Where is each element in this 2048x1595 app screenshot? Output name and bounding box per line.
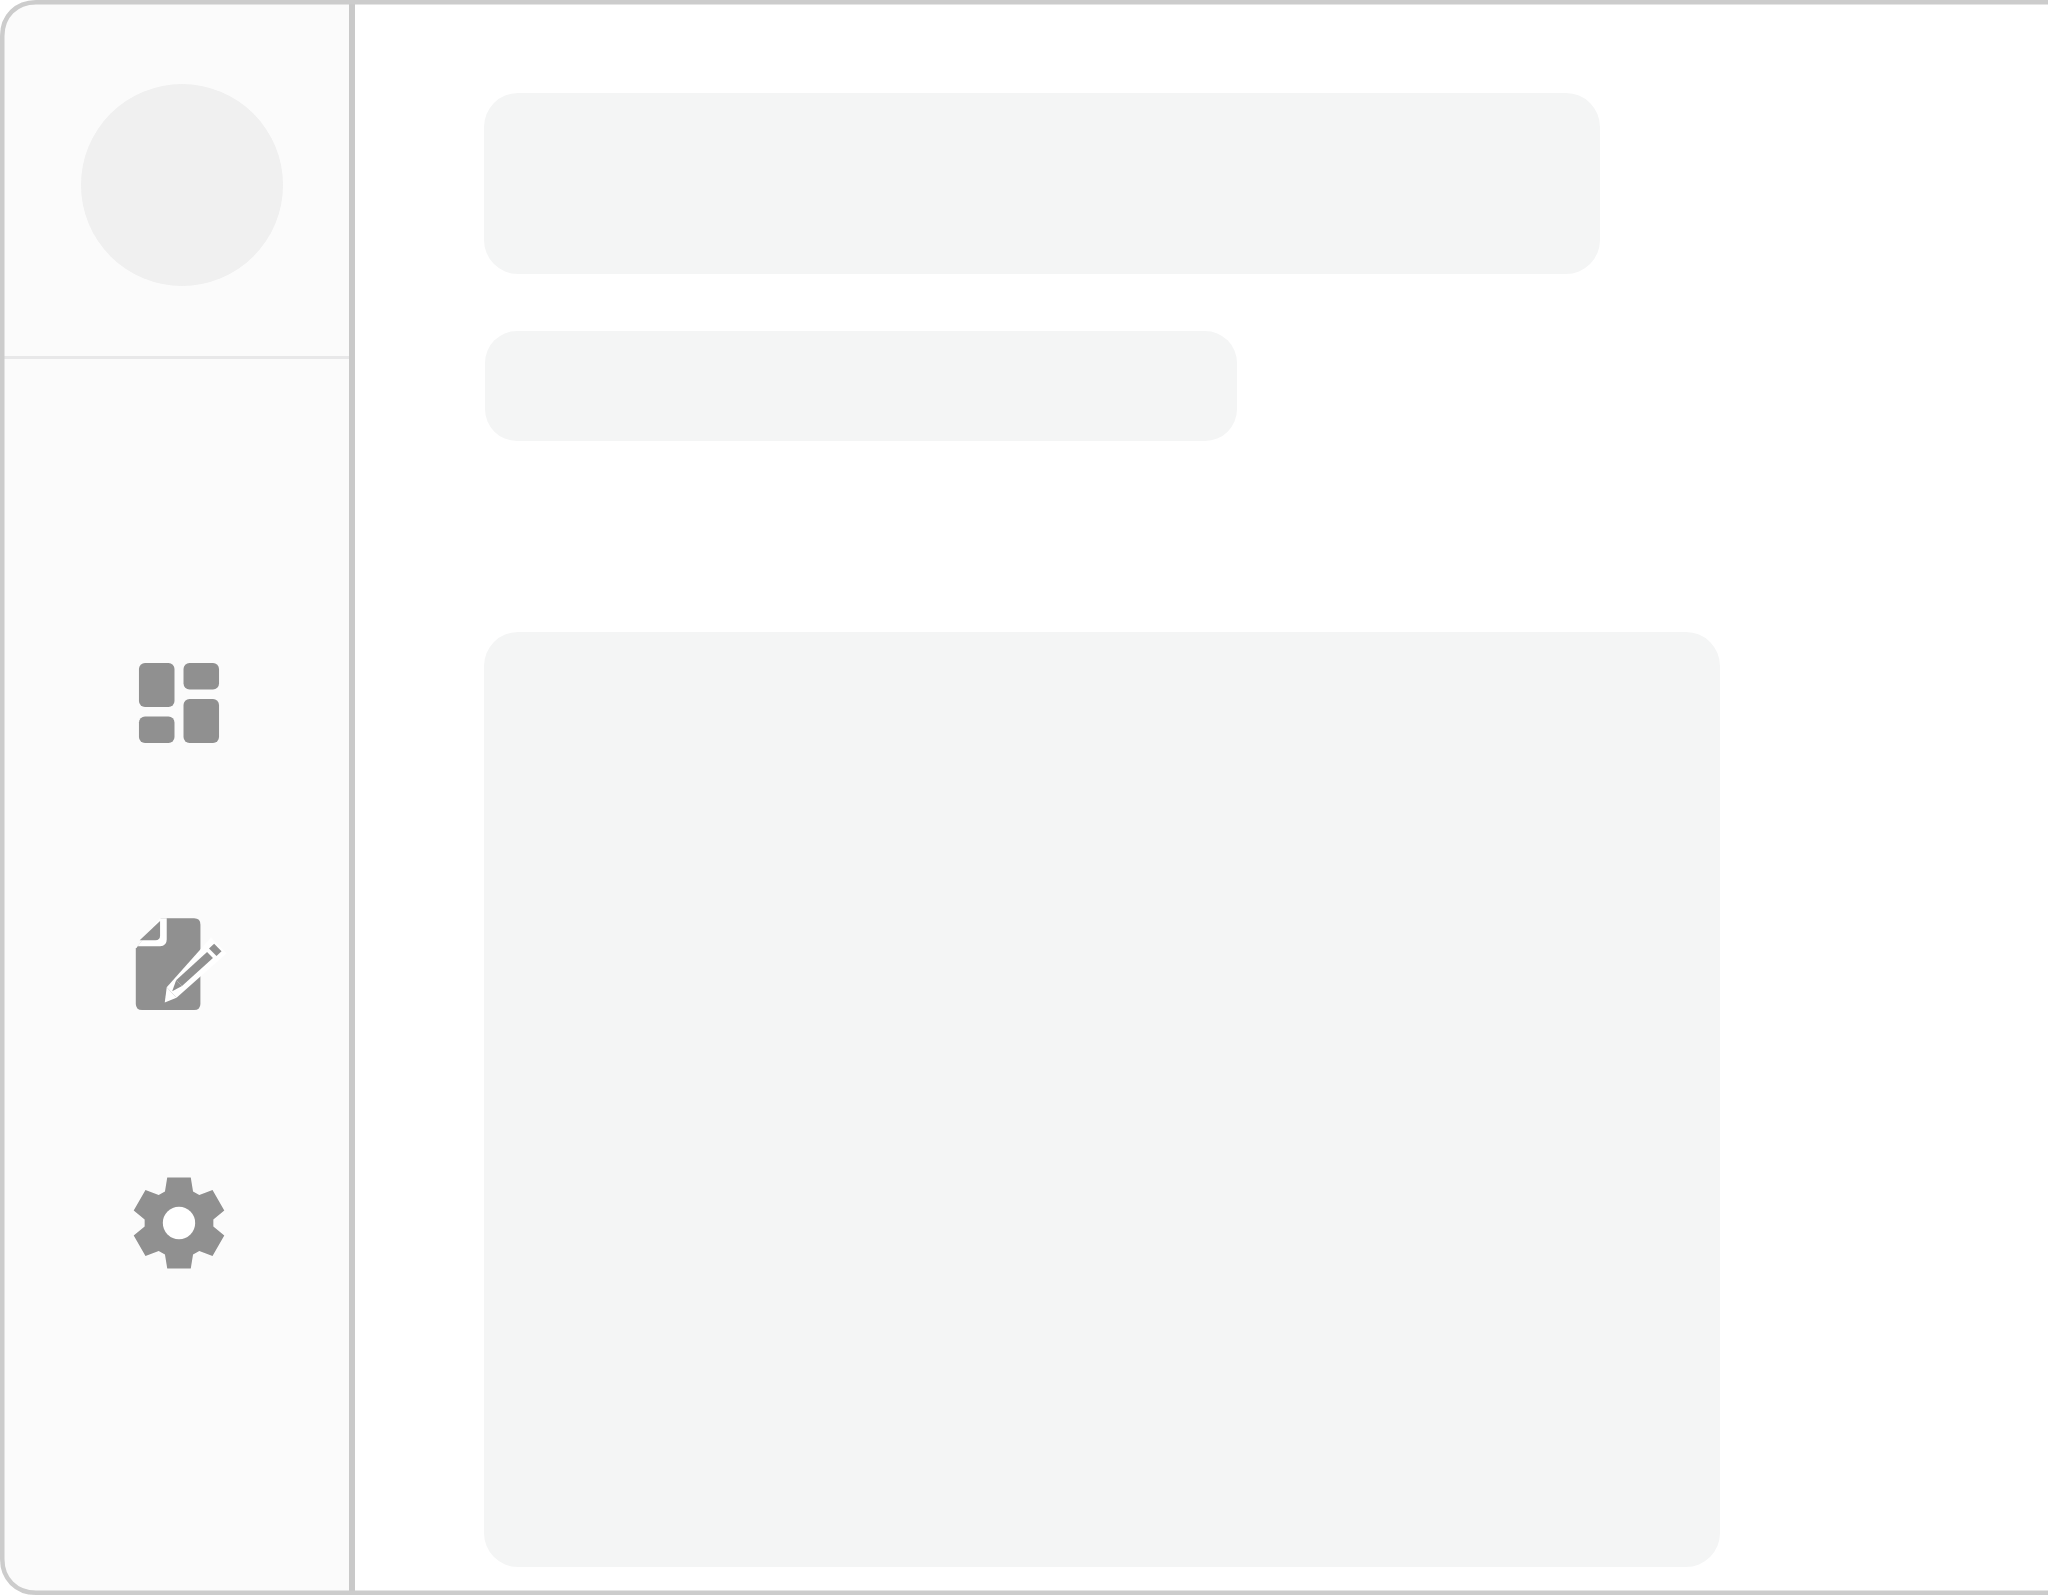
button[interactable]: Notes and drafts	[122, 903, 242, 1023]
button[interactable]: Settings	[119, 1163, 239, 1283]
button[interactable]: Profile	[81, 84, 283, 286]
button[interactable]: Dashboard	[119, 643, 239, 763]
